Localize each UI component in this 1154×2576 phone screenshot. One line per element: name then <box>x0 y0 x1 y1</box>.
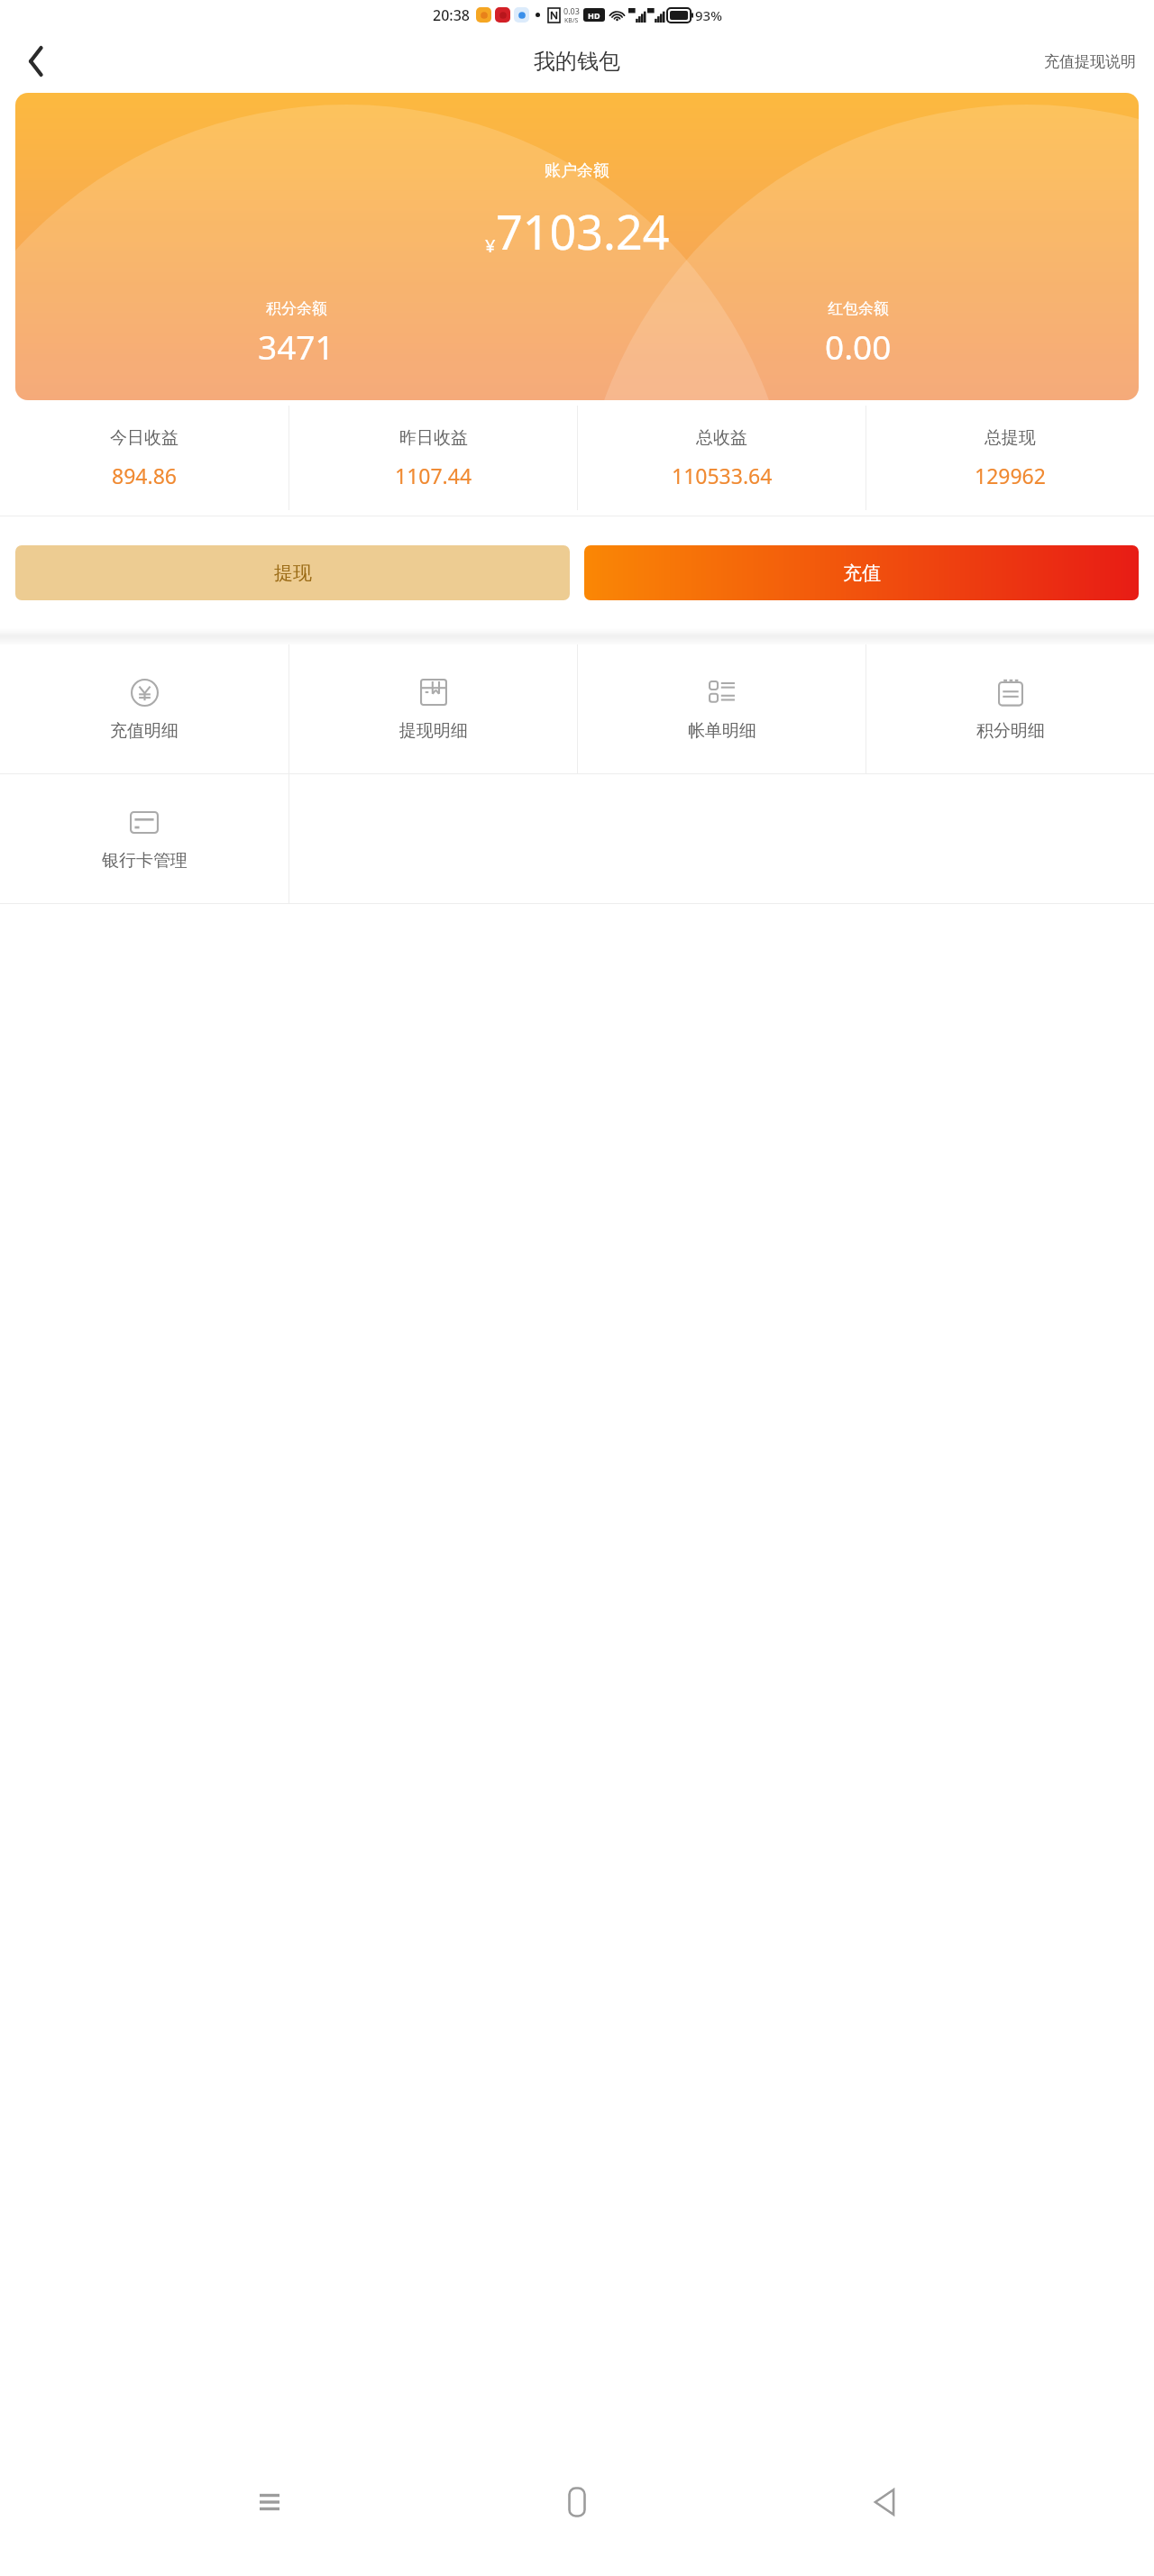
button[interactable]: 昨日收益 <box>289 400 577 516</box>
staticText: 红包余额 <box>828 299 889 318</box>
staticText: 积分明细 <box>976 720 1045 742</box>
staticText: 我的钱包 <box>534 48 620 75</box>
staticText: 20:38 <box>433 5 470 25</box>
staticText: 110533.64 <box>672 461 773 489</box>
button[interactable]: 今日收益 <box>0 400 288 516</box>
staticText: 129962 <box>975 461 1046 489</box>
staticText: 总收益 <box>696 427 747 449</box>
staticText: 1107.44 <box>395 461 472 489</box>
button[interactable]: 总提现 <box>866 400 1154 516</box>
staticText: KB/S <box>564 16 579 25</box>
button[interactable]: 充值 <box>584 545 1139 600</box>
button[interactable]: 充值提现说明 <box>1037 45 1143 78</box>
staticText: 帐单明细 <box>688 720 756 742</box>
button[interactable]: 账户余额 <box>15 93 1139 400</box>
staticText: 894.86 <box>112 461 177 489</box>
button[interactable]: Back <box>13 38 60 85</box>
button[interactable]: 帐单明细 <box>578 644 865 773</box>
staticText: 积分余额 <box>266 299 327 318</box>
staticText: 充值 <box>843 562 881 585</box>
staticText: 提现 <box>274 562 312 585</box>
button[interactable]: Home <box>539 2470 615 2535</box>
button[interactable]: 提现明细 <box>289 644 577 773</box>
button[interactable]: Back <box>847 2470 922 2535</box>
button[interactable]: 银行卡管理 <box>0 774 288 903</box>
staticText: 3471 <box>258 324 334 369</box>
staticText: 昨日收益 <box>399 427 468 449</box>
button[interactable]: 积分明细 <box>866 644 1154 773</box>
staticText: 今日收益 <box>110 427 179 449</box>
staticText: 提现明细 <box>399 720 468 742</box>
staticText: 充值提现说明 <box>1044 52 1136 71</box>
staticText: 充值明细 <box>110 720 179 742</box>
staticText: 0.03 <box>563 5 580 16</box>
staticText: 0.00 <box>825 324 892 369</box>
staticText: HD <box>588 10 600 21</box>
staticText: 总提现 <box>985 427 1036 449</box>
button[interactable]: 总收益 <box>578 400 865 516</box>
button[interactable]: Recents <box>232 2470 307 2535</box>
staticText: 7103.24 <box>496 199 670 263</box>
button[interactable]: 充值明细 <box>0 644 288 773</box>
button[interactable]: 提现 <box>15 545 570 600</box>
staticText: 银行卡管理 <box>102 850 188 872</box>
staticText: ¥ <box>485 233 496 258</box>
staticText: 93% <box>695 6 722 24</box>
staticText: 账户余额 <box>545 160 609 181</box>
